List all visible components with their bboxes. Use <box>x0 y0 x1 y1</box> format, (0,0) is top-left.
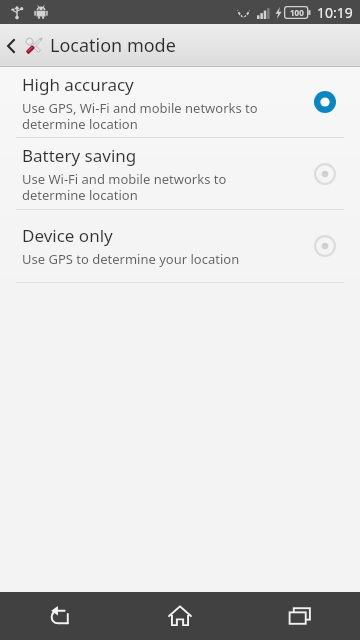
staticText: Use GPS, Wi-Fi and mobile networks to de… <box>22 99 258 132</box>
staticText: Device only <box>22 224 113 247</box>
button[interactable]: Select Battery saving <box>308 157 342 191</box>
staticText: High accuracy <box>22 73 134 96</box>
button[interactable]: Home <box>120 592 240 640</box>
button[interactable]: Select High accuracy <box>308 85 342 119</box>
button[interactable]: Device only <box>0 210 360 282</box>
button[interactable]: Battery saving <box>0 138 360 209</box>
staticText: 10:19 <box>317 3 353 22</box>
button[interactable]: High accuracy <box>0 67 360 137</box>
button[interactable]: Recent apps <box>240 592 360 640</box>
staticText: Location mode <box>50 33 176 58</box>
staticText: Use Wi-Fi and mobile networks to determi… <box>22 170 227 203</box>
staticText: Use GPS to determine your location <box>22 250 240 268</box>
staticText: Battery saving <box>22 144 137 167</box>
button[interactable]: Select Device only <box>308 229 342 263</box>
button[interactable]: Back to Settings <box>0 29 53 63</box>
staticText: 100 <box>290 7 304 18</box>
button[interactable]: Back <box>0 592 120 640</box>
